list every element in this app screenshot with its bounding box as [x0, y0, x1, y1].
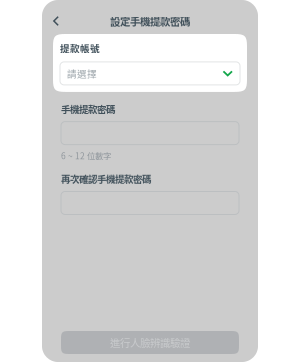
button[interactable]: 請選擇	[60, 62, 240, 85]
staticText: 再次確認手機提款密碼	[61, 172, 151, 185]
staticText: 請選擇	[67, 66, 97, 80]
staticText: 提款帳號	[60, 41, 100, 55]
staticText: 6 ~ 12 位數字	[61, 150, 111, 162]
button[interactable]: Back	[44, 8, 68, 34]
button[interactable]: 進行人臉辨識驗證	[61, 331, 239, 354]
staticText: 進行人臉辨識驗證	[110, 335, 190, 350]
staticText: 設定手機提款密碼	[110, 13, 190, 29]
staticText: 手機提款密碼	[61, 102, 115, 116]
